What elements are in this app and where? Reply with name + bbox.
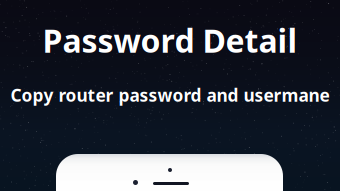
staticText: Password Detail	[42, 19, 297, 61]
staticText: Copy router password and usermane	[10, 83, 329, 106]
button[interactable]: Copy router password and username	[56, 154, 283, 191]
